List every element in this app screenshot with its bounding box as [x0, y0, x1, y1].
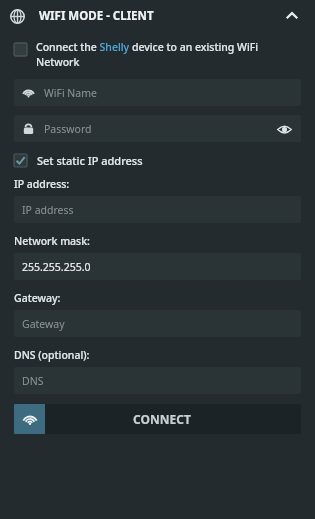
button[interactable]: CONNECT	[14, 404, 301, 434]
staticText: Password	[44, 122, 92, 136]
staticText: WiFi Name	[44, 86, 97, 100]
staticText: CONNECT	[133, 411, 191, 427]
button[interactable]: Set static IP address	[0, 151, 315, 170]
staticText: Gateway:	[14, 291, 61, 305]
staticText: Network mask:	[14, 234, 90, 248]
staticText: Gateway	[22, 317, 65, 331]
staticText: Connect the Shelly device to an existing…	[36, 40, 301, 69]
button[interactable]: DNS	[14, 367, 301, 394]
staticText: IP address:	[14, 177, 70, 191]
staticText: IP address	[22, 203, 74, 217]
button[interactable]: Gateway	[14, 310, 301, 337]
button[interactable]: Connect the Shelly device to an existing…	[0, 38, 315, 71]
button[interactable]: Password	[14, 115, 301, 142]
staticText: DNS (optional):	[14, 348, 90, 362]
button[interactable]: Show password	[275, 120, 293, 138]
staticText: Set static IP address	[37, 153, 143, 168]
button[interactable]: Collapse	[279, 3, 305, 29]
button[interactable]: Network	[0, 0, 315, 32]
staticText: 255.255.255.0	[22, 260, 91, 274]
staticText: DNS	[22, 374, 44, 388]
button[interactable]: IP address	[14, 196, 301, 223]
other: Network	[10, 9, 25, 24]
staticText: WIFI MODE - CLIENT	[39, 8, 154, 24]
button[interactable]: 255.255.255.0	[14, 253, 301, 280]
button[interactable]: WiFi Name	[14, 79, 301, 106]
